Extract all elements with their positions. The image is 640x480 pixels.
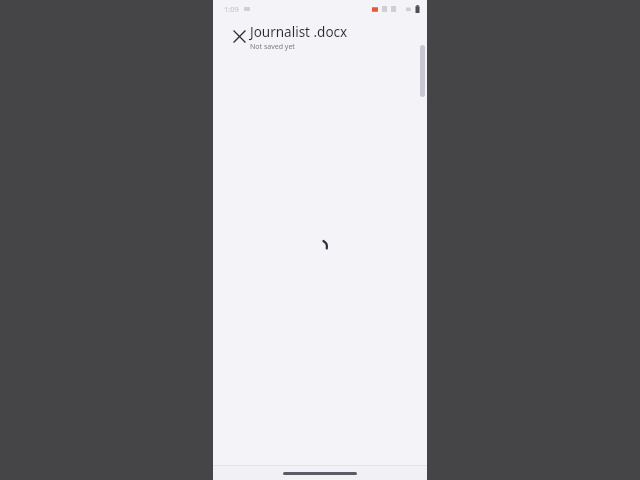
button[interactable]: Home bbox=[283, 472, 357, 475]
button[interactable]: Journalist .docx bbox=[250, 23, 348, 52]
staticText: 1:09 bbox=[224, 4, 239, 14]
button[interactable]: Close bbox=[225, 22, 253, 50]
staticText: Not saved yet bbox=[250, 42, 295, 52]
staticText: Journalist .docx bbox=[250, 23, 348, 41]
